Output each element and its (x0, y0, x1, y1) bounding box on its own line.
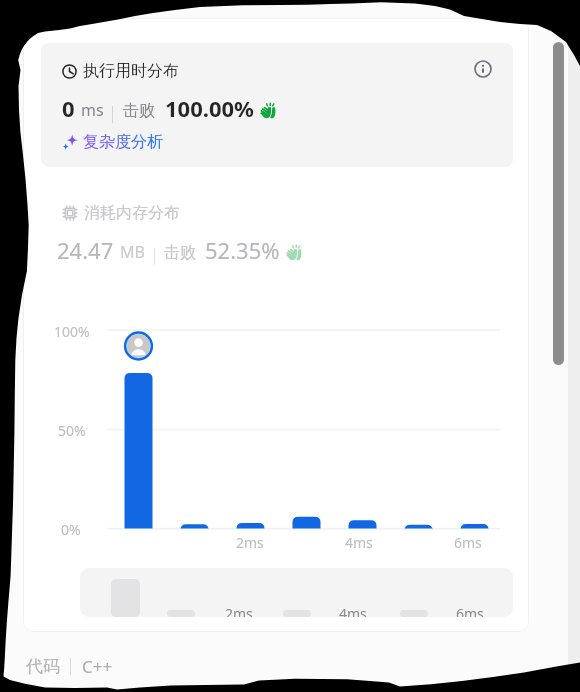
staticText: 52.35% (205, 235, 280, 265)
staticText: ms (81, 99, 104, 121)
staticText: 击败 (123, 101, 155, 121)
staticText: MB (120, 241, 145, 263)
staticText: C++ (82, 655, 113, 678)
staticText: 2ms (225, 604, 253, 617)
button[interactable]: Info (472, 58, 494, 80)
staticText: 0 (62, 93, 75, 123)
staticText: 消耗内存分布 (84, 203, 180, 223)
staticText: 代码 (26, 656, 60, 677)
staticText: 4ms (345, 533, 373, 552)
staticText: 2ms (236, 533, 264, 552)
staticText: 4ms (339, 604, 367, 617)
staticText: 100% (54, 322, 90, 341)
button[interactable]: 代码 (26, 655, 113, 678)
staticText: 6ms (454, 533, 482, 552)
button[interactable]: 执行用时分布 (62, 61, 179, 81)
staticText: 24.47 (57, 235, 114, 265)
staticText: 复杂度分析 (83, 132, 163, 152)
staticText: 6ms (456, 604, 484, 617)
staticText: 50% (58, 421, 86, 440)
staticText: 0% (61, 520, 81, 539)
button[interactable]: 复杂度分析 (62, 132, 163, 152)
staticText: 执行用时分布 (83, 61, 179, 81)
staticText: 100.00% (165, 93, 254, 123)
staticText: 击败 (164, 243, 196, 263)
